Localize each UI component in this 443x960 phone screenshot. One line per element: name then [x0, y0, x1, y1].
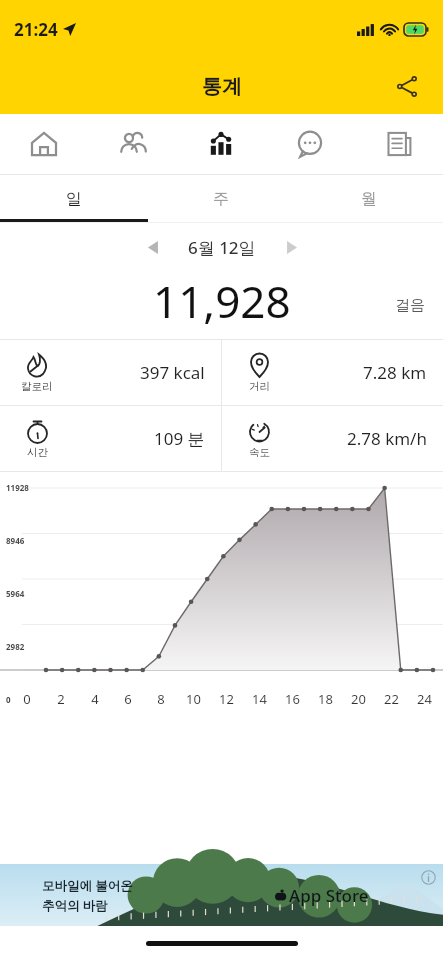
- staticText: 20: [351, 690, 366, 708]
- button[interactable]: Next day: [272, 227, 312, 267]
- button[interactable]: 주: [147, 175, 295, 222]
- staticText: 8: [157, 690, 165, 708]
- button[interactable]: Share: [383, 62, 431, 110]
- staticText: 속도: [249, 446, 270, 459]
- staticText: 0: [23, 690, 31, 708]
- staticText: 11928: [6, 482, 29, 493]
- staticText: 칼로리: [21, 380, 53, 393]
- staticText: 통계: [202, 74, 242, 99]
- staticText: 시간: [27, 446, 48, 459]
- button[interactable]: 시간: [0, 406, 221, 471]
- button[interactable]: Previous day: [132, 227, 172, 267]
- staticText: 21:24: [14, 18, 58, 41]
- button[interactable]: 모바일에 불어온: [0, 864, 443, 926]
- button[interactable]: 거리: [222, 340, 443, 405]
- staticText: 일: [66, 189, 82, 209]
- staticText: 월: [361, 189, 377, 209]
- staticText: 24: [417, 690, 432, 708]
- staticText: 6월 12일: [188, 236, 256, 259]
- staticText: 주: [213, 189, 229, 209]
- staticText: 8946: [6, 535, 25, 546]
- staticText: App Store: [289, 884, 369, 907]
- staticText: 추억의 바람: [42, 897, 108, 914]
- button[interactable]: 속도: [222, 406, 443, 471]
- staticText: 10: [186, 690, 201, 708]
- staticText: 22: [384, 690, 399, 708]
- staticText: 걸음: [395, 296, 425, 315]
- button[interactable]: 칼로리: [0, 340, 221, 405]
- staticText: 12: [219, 690, 234, 708]
- button[interactable]: 월: [295, 175, 443, 222]
- button[interactable]: Ad info: [419, 868, 437, 886]
- staticText: 14: [252, 690, 267, 708]
- staticText: 109 분: [154, 427, 205, 450]
- button[interactable]: Chat: [265, 114, 354, 174]
- staticText: 18: [318, 690, 333, 708]
- button[interactable]: Friends: [88, 114, 176, 174]
- staticText: 0: [6, 694, 11, 705]
- staticText: 모바일에 불어온: [42, 877, 133, 894]
- staticText: 7.28 km: [363, 361, 427, 384]
- staticText: 거리: [249, 380, 270, 393]
- staticText: 5964: [6, 588, 25, 599]
- staticText: 2: [57, 690, 65, 708]
- button[interactable]: Feed: [354, 114, 443, 174]
- staticText: 4: [91, 690, 99, 708]
- staticText: 2982: [6, 641, 25, 652]
- staticText: 6: [124, 690, 132, 708]
- staticText: 397 kcal: [140, 361, 205, 384]
- button[interactable]: Home: [0, 114, 88, 174]
- staticText: 11,928: [153, 271, 291, 329]
- staticText: 16: [285, 690, 300, 708]
- staticText: 2.78 km/h: [347, 427, 427, 450]
- button[interactable]: Statistics: [176, 114, 265, 174]
- button[interactable]: 일: [0, 175, 147, 222]
